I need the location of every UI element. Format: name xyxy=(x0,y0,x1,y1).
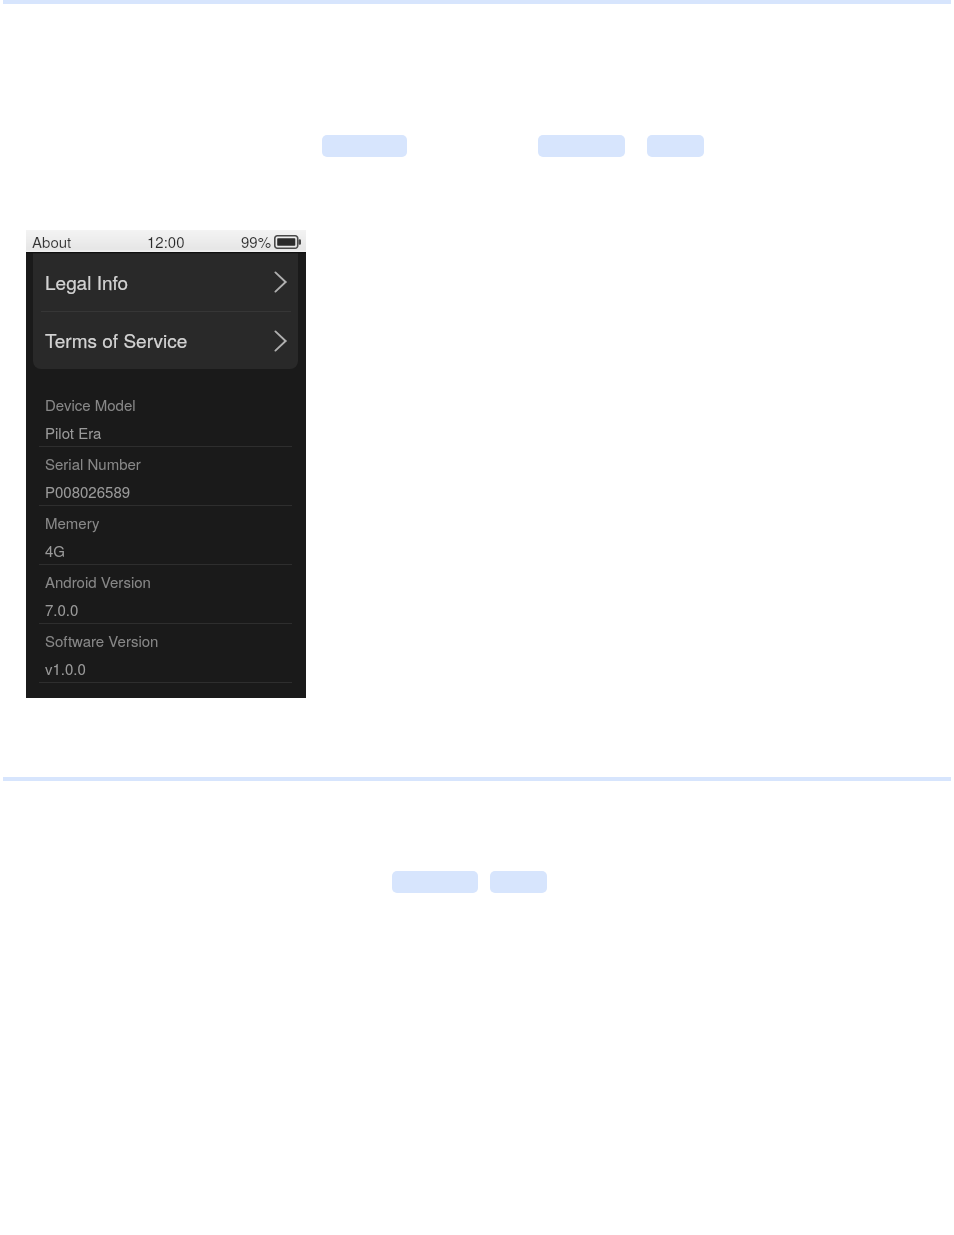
staticText: 99% xyxy=(241,231,272,252)
staticText: 7.0.0 xyxy=(45,599,79,620)
button[interactable]: Terms of Service xyxy=(33,312,298,369)
staticText: About xyxy=(32,231,72,252)
staticText: Terms of Service xyxy=(45,326,188,353)
staticText: Software Version xyxy=(45,630,159,651)
staticText: Memery xyxy=(45,512,100,533)
button[interactable]: Legal Info xyxy=(33,253,298,311)
other: Open Legal Info xyxy=(274,271,287,293)
staticText: P008026589 xyxy=(45,481,131,502)
button[interactable]: Software Version xyxy=(26,624,306,683)
button[interactable]: Memery xyxy=(26,506,306,565)
staticText: v1.0.0 xyxy=(45,658,86,679)
button[interactable]: Serial Number xyxy=(26,447,306,506)
staticText: Legal Info xyxy=(45,268,129,295)
other: Open Terms of Service xyxy=(274,330,287,352)
button[interactable]: Device Model xyxy=(26,388,306,447)
button[interactable]: Android Version xyxy=(26,565,306,624)
staticText: 4G xyxy=(45,540,66,561)
staticText: 12:00 xyxy=(147,231,185,252)
staticText: Device Model xyxy=(45,394,136,415)
staticText: Serial Number xyxy=(45,453,141,474)
staticText: Android Version xyxy=(45,571,151,592)
staticText: Pilot Era xyxy=(45,422,102,443)
